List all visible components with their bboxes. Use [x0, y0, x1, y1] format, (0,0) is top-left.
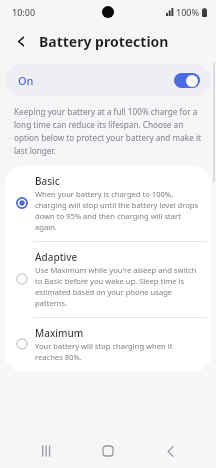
staticText: On	[18, 73, 34, 88]
button[interactable]: On	[5, 64, 211, 96]
staticText: Keeping your battery at a full 100% char…	[14, 106, 203, 157]
staticText: Battery protection	[39, 32, 169, 51]
button[interactable]: Home	[92, 435, 124, 467]
button[interactable]: Back	[154, 435, 186, 467]
button[interactable]: Basic	[5, 166, 211, 241]
staticText: Maximum	[35, 326, 84, 340]
button[interactable]: Maximum	[5, 318, 211, 371]
staticText: Basic	[35, 174, 60, 188]
staticText: Use Maximum while you're asleep and swit…	[35, 265, 202, 308]
staticText: Your battery will stop charging when it …	[35, 341, 202, 362]
staticText: When your battery is charged to 100%, ch…	[35, 189, 202, 232]
staticText: 10:00	[12, 6, 36, 18]
button[interactable]: Recent apps	[30, 435, 62, 467]
staticText: 100%	[176, 6, 200, 18]
button[interactable]: Adaptive	[5, 242, 211, 317]
button[interactable]: Back	[9, 29, 33, 53]
staticText: Adaptive	[35, 250, 78, 264]
